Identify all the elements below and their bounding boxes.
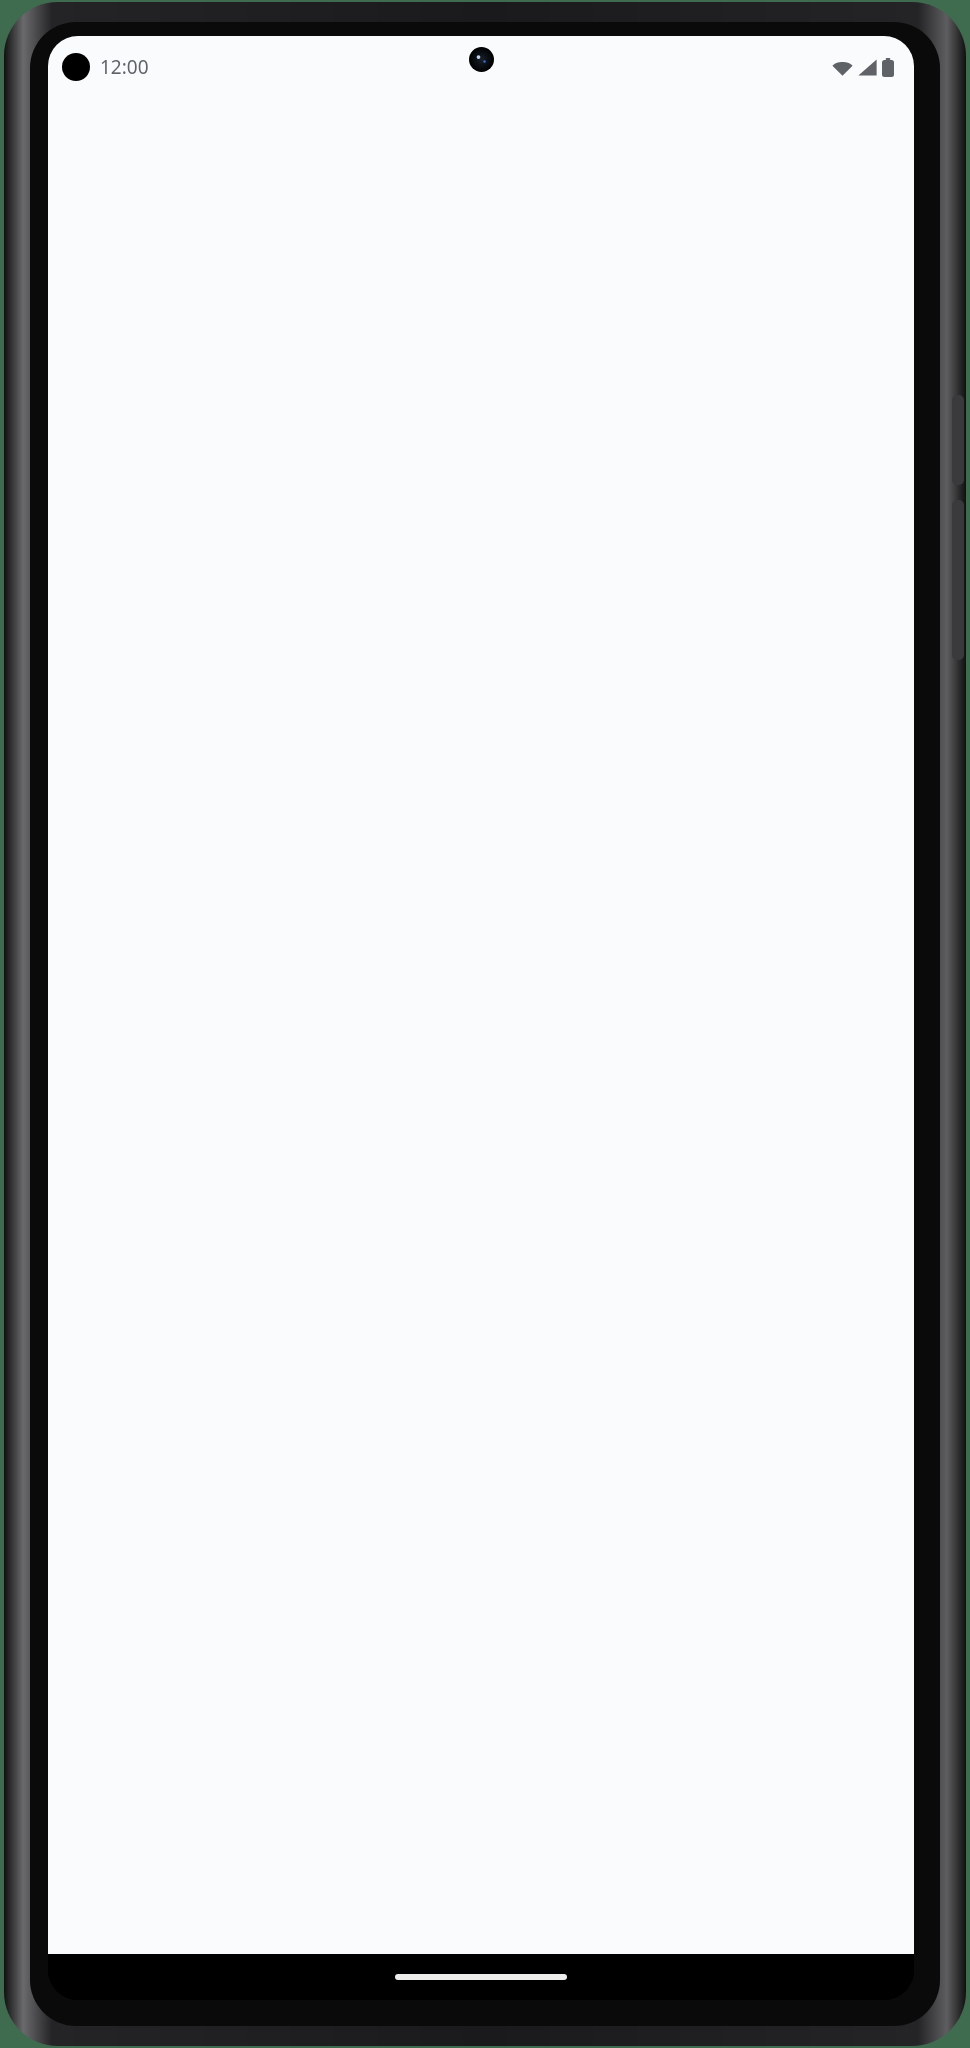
other: Notification (62, 53, 90, 81)
button[interactable]: Home (395, 1974, 567, 1980)
staticText: 12:00 (100, 54, 149, 80)
